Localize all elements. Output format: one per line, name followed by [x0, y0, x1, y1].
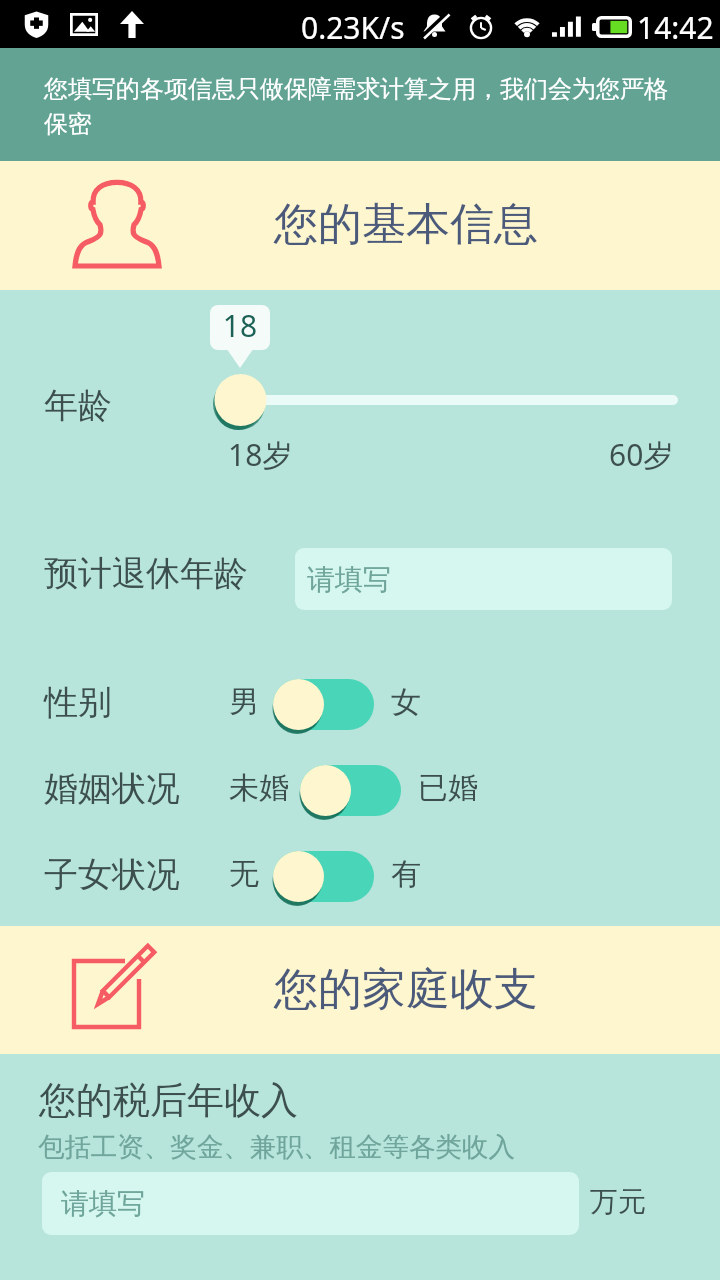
staticText: 您的家庭收支: [274, 962, 538, 1017]
button[interactable]: 您的基本信息: [0, 161, 720, 290]
staticText: 女: [391, 683, 421, 721]
staticText: 60岁: [609, 434, 674, 475]
button[interactable]: 性别: [273, 674, 374, 734]
staticText: 请填写: [307, 562, 391, 597]
staticText: 您填写的各项信息只做保障需求计算之用，我们会为您严格保密: [44, 74, 684, 139]
staticText: 已婚: [418, 769, 478, 807]
staticText: 无: [229, 855, 259, 893]
staticText: 18岁: [228, 434, 293, 475]
staticText: 您的基本信息: [274, 197, 538, 252]
staticText: 男: [229, 683, 259, 721]
staticText: 有: [391, 855, 421, 893]
staticText: 0.23K/s: [301, 7, 405, 48]
staticText: 未婚: [229, 769, 289, 807]
staticText: 18: [210, 305, 270, 346]
staticText: 包括工资、奖金、兼职、租金等各类收入: [38, 1130, 515, 1163]
staticText: 14:42: [637, 7, 714, 48]
button[interactable]: 请填写: [42, 1172, 579, 1235]
staticText: 预计退休年龄: [44, 552, 248, 595]
staticText: 婚姻状况: [44, 767, 180, 810]
button[interactable]: 婚姻状况: [300, 760, 401, 820]
staticText: 万元: [590, 1184, 646, 1219]
staticText: 性别: [44, 681, 112, 724]
staticText: 年龄: [44, 384, 112, 427]
button[interactable]: 您的家庭收支: [0, 926, 720, 1054]
staticText: 您的税后年收入: [39, 1077, 298, 1124]
button[interactable]: 子女状况: [273, 846, 374, 906]
staticText: 请填写: [61, 1186, 145, 1221]
button[interactable]: 请填写: [295, 548, 672, 610]
staticText: 子女状况: [44, 853, 180, 896]
